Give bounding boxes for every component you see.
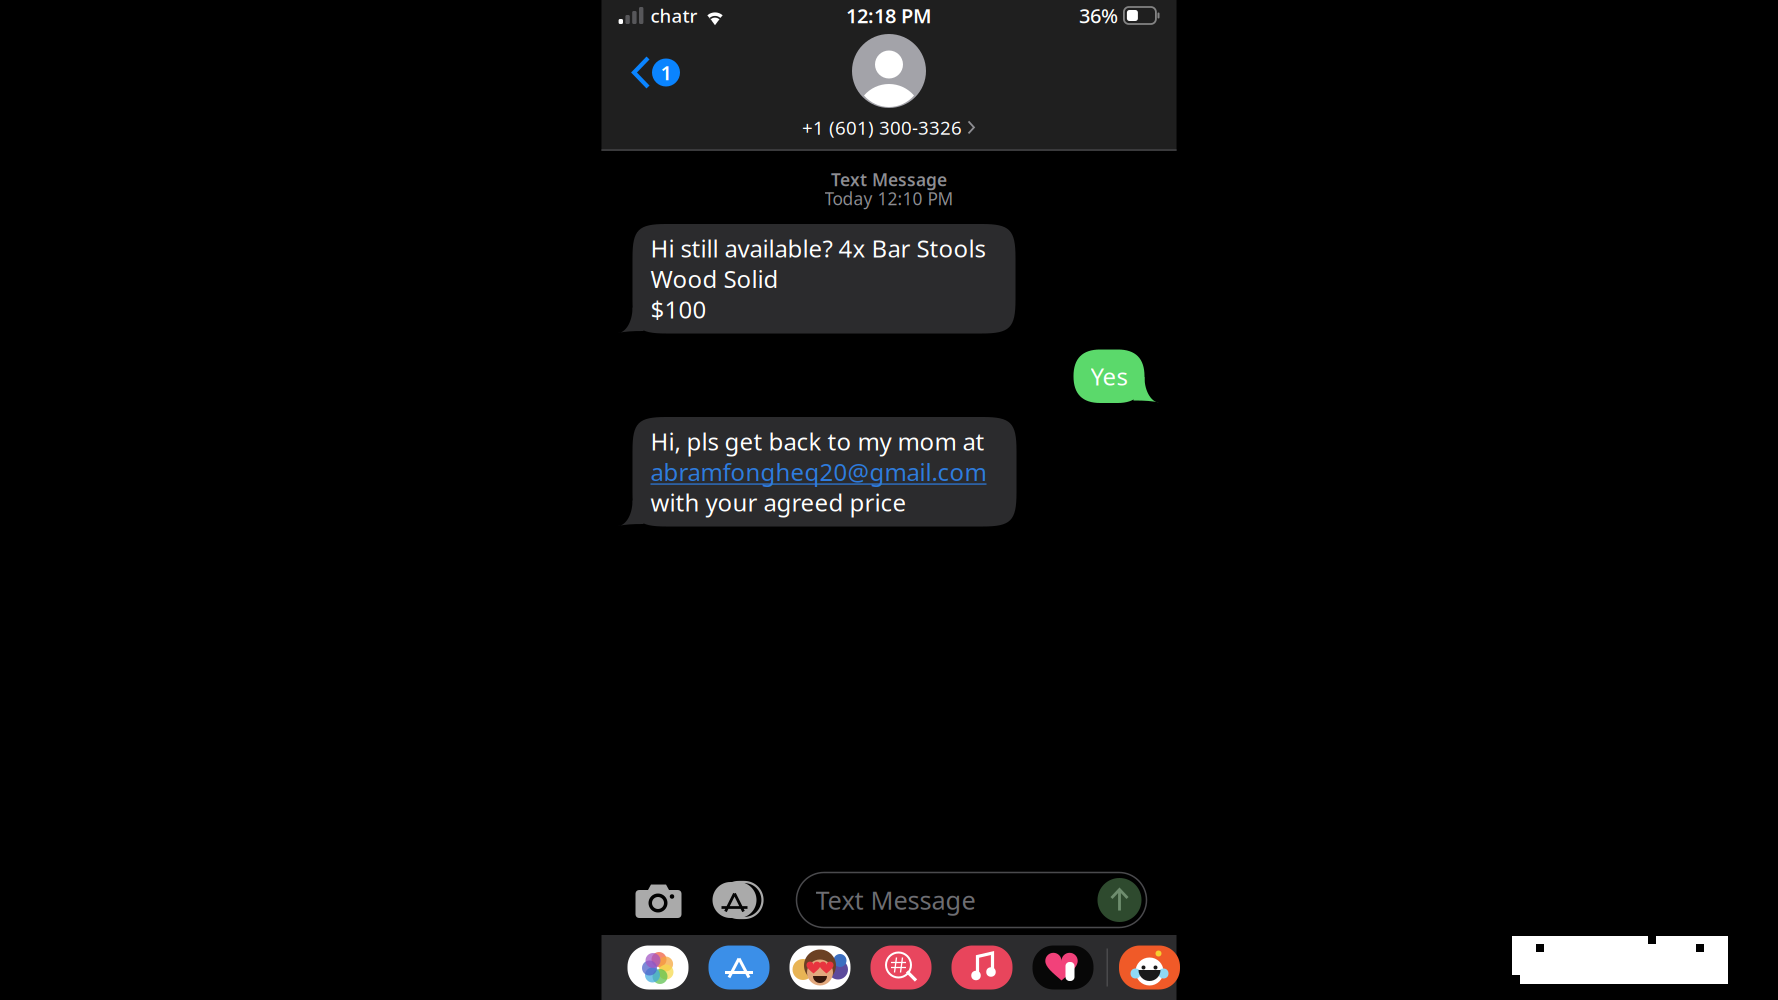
button[interactable]: Photos — [627, 945, 688, 989]
staticText: 36% — [1079, 2, 1118, 29]
staticText: Yes — [1090, 360, 1127, 392]
button[interactable]: Reddit — [1119, 945, 1180, 989]
staticText: chatr — [650, 3, 697, 28]
button[interactable]: Apple Pay — [1032, 945, 1093, 989]
staticText: Text Message — [815, 883, 975, 917]
staticText: Text Message — [831, 168, 947, 191]
staticText: $100 — [650, 293, 706, 325]
staticText: +1 (601) 300-3326 — [802, 115, 962, 140]
button[interactable]: Camera — [630, 874, 686, 926]
button[interactable]: +1 (601) 300-3326 — [802, 108, 976, 140]
staticText: with your agreed price — [650, 486, 906, 518]
button[interactable]: App Store — [708, 945, 769, 989]
staticText: abramfongheq20@gmail.com — [650, 456, 986, 488]
staticText: Wood Solid — [650, 263, 778, 295]
staticText: Hi still available? 4x Bar Stools — [650, 232, 985, 264]
staticText: Hi, pls get back to my mom at — [650, 425, 984, 457]
staticText: 1 — [660, 59, 671, 86]
button[interactable]: Images — [870, 945, 931, 989]
button[interactable]: Back — [625, 48, 686, 97]
staticText: 12:18 PM — [846, 2, 932, 29]
button[interactable]: Send — [1097, 878, 1141, 922]
staticText: Today 12:10 PM — [824, 187, 953, 210]
button[interactable]: Memoji — [789, 945, 850, 989]
button[interactable]: Music — [951, 945, 1012, 989]
button[interactable]: Apps — [707, 874, 769, 926]
